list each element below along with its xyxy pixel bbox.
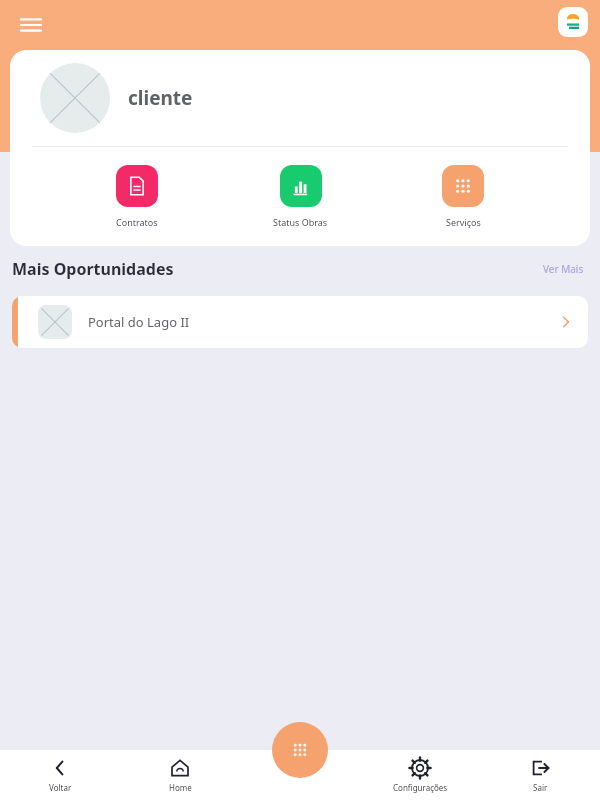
- staticText: Voltar: [49, 782, 72, 793]
- staticText: Contratos: [116, 216, 158, 228]
- staticText: Status Obras: [273, 216, 328, 228]
- staticText: Serviços: [446, 216, 481, 228]
- button[interactable]: Voltar: [0, 750, 120, 800]
- staticText: Ver Mais: [543, 262, 584, 276]
- staticText: Mais Oportunidades: [12, 258, 174, 280]
- button[interactable]: Status Obras: [265, 165, 336, 228]
- staticText: cliente: [128, 85, 193, 111]
- button[interactable]: Sair: [480, 750, 600, 800]
- button[interactable]: Serviços: [434, 165, 492, 228]
- button[interactable]: Logo: [558, 7, 588, 37]
- staticText: Portal do Lago II: [88, 313, 190, 331]
- staticText: Configurações: [393, 782, 448, 793]
- button[interactable]: Menu: [14, 8, 48, 42]
- button[interactable]: Contratos: [108, 165, 166, 228]
- staticText: Home: [169, 782, 192, 793]
- button[interactable]: Ver Mais: [539, 258, 588, 280]
- button[interactable]: Configurações: [360, 750, 480, 800]
- button[interactable]: Portal do Lago II: [12, 296, 588, 348]
- button[interactable]: Home: [120, 750, 240, 800]
- button[interactable]: Apps: [272, 722, 328, 778]
- staticText: Sair: [533, 782, 548, 793]
